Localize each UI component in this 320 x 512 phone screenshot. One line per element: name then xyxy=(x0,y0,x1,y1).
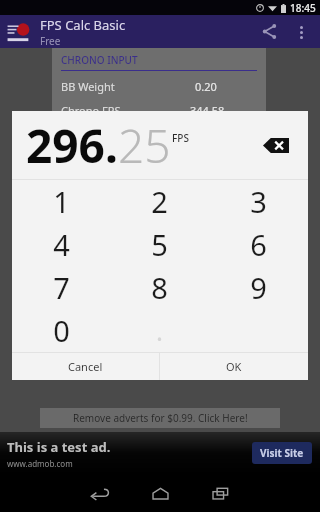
button[interactable]: 7 xyxy=(12,266,110,309)
button[interactable]: Backspace xyxy=(256,130,296,160)
staticText: Cancel xyxy=(68,359,103,374)
staticText: 0.20 xyxy=(195,79,217,94)
staticText: 18:45 xyxy=(290,1,316,15)
button[interactable]: 4 xyxy=(12,223,110,266)
staticText: 4 xyxy=(53,225,70,264)
staticText: CHRONO INPUT xyxy=(61,53,138,67)
staticText: 25 xyxy=(118,114,171,177)
staticText: Remove adverts for $0.99. Click Here! xyxy=(73,411,248,425)
staticText: 2 xyxy=(151,182,168,221)
button[interactable]: 1 xyxy=(12,180,110,223)
staticText: . xyxy=(156,313,163,348)
staticText: 296 xyxy=(26,114,105,177)
staticText: . xyxy=(105,114,118,177)
button[interactable]: Share xyxy=(252,15,286,48)
staticText: 9 xyxy=(250,268,267,307)
button[interactable]: Remove adverts for $0.99. Click Here! xyxy=(40,408,280,428)
staticText: www.admob.com xyxy=(7,458,73,469)
staticText: BB Weight xyxy=(61,79,115,94)
staticText: Free xyxy=(40,34,61,48)
button[interactable]: Back xyxy=(70,474,130,512)
button[interactable]: Visit Site xyxy=(260,446,304,460)
staticText: 0 xyxy=(53,311,70,350)
button[interactable]: More options xyxy=(286,17,316,47)
staticText: FPS xyxy=(172,131,189,145)
staticText: 6 xyxy=(250,225,267,264)
staticText: 8 xyxy=(151,268,168,307)
button[interactable]: 3 xyxy=(209,180,308,223)
button[interactable]: 2 xyxy=(110,180,209,223)
button[interactable]: Home xyxy=(130,474,190,512)
button[interactable]: Recent apps xyxy=(190,474,250,512)
staticText: 5 xyxy=(151,225,168,264)
staticText: Visit Site xyxy=(260,446,304,460)
button[interactable]: 6 xyxy=(209,223,308,266)
staticText: FPS Calc Basic xyxy=(40,16,126,34)
button[interactable]: OK xyxy=(160,353,308,380)
staticText: 3 xyxy=(250,182,267,221)
staticText: OK xyxy=(226,359,242,374)
staticText: Chrono FPS xyxy=(61,103,121,118)
staticText: This is a test ad. xyxy=(7,438,111,456)
staticText: 1 xyxy=(53,182,70,221)
button[interactable]: This is a test ad. xyxy=(0,432,320,474)
button[interactable]: 9 xyxy=(209,266,308,309)
button[interactable]: 0 xyxy=(12,309,110,352)
button[interactable]: 5 xyxy=(110,223,209,266)
button[interactable]: Cancel xyxy=(12,353,159,380)
staticText: 7 xyxy=(53,268,70,307)
button[interactable]: 8 xyxy=(110,266,209,309)
staticText: 344.58 xyxy=(190,103,225,118)
